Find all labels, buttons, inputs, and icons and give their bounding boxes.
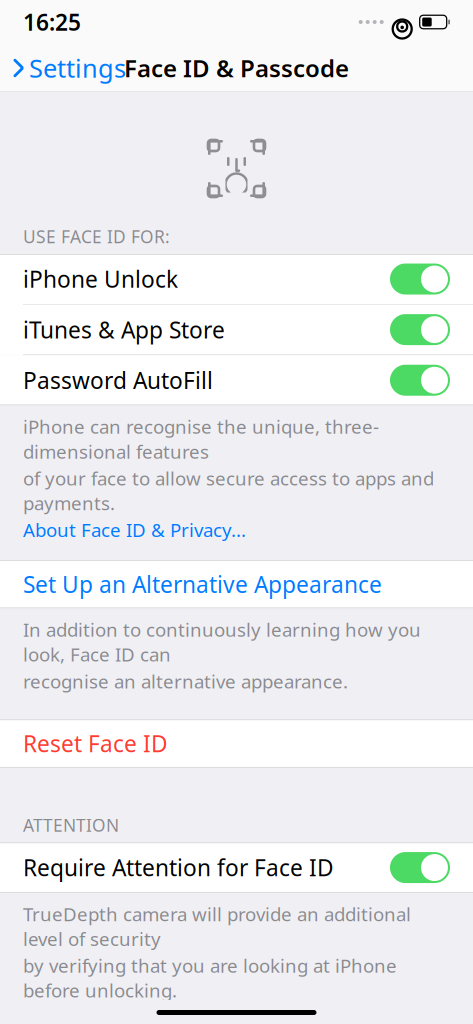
button[interactable]: Set Up an Alternative Appearance bbox=[0, 560, 473, 608]
staticText: USE FACE ID FOR: bbox=[23, 225, 170, 248]
button[interactable]: About Face ID & Privacy... bbox=[23, 517, 246, 542]
button[interactable]: Require Attention for Face ID bbox=[0, 843, 473, 893]
staticText: TrueDepth camera will provide an additio… bbox=[23, 902, 411, 951]
staticText: Settings bbox=[29, 51, 126, 85]
staticText: Face ID & Passcode bbox=[124, 52, 349, 84]
staticText: About Face ID & Privacy... bbox=[23, 517, 246, 542]
button[interactable]: Settings bbox=[0, 46, 136, 90]
staticText: iTunes & App Store bbox=[23, 315, 225, 345]
staticText: iPhone Unlock bbox=[23, 264, 178, 294]
button[interactable]: Reset Face ID bbox=[0, 719, 473, 767]
staticText: iPhone can recognise the unique, three-d… bbox=[23, 414, 379, 464]
staticText: by verifying that you are looking at iPh… bbox=[23, 953, 397, 1003]
button[interactable]: iTunes & App Store bbox=[0, 305, 473, 355]
staticText: of your face to allow secure access to a… bbox=[23, 466, 434, 515]
staticText: Set Up an Alternative Appearance bbox=[23, 569, 382, 599]
staticText: Some sunglasses may block attention dete… bbox=[23, 1005, 448, 1024]
staticText: In addition to continuously learning how… bbox=[23, 617, 421, 667]
button[interactable]: Password AutoFill bbox=[0, 355, 473, 405]
staticText: Password AutoFill bbox=[23, 365, 213, 395]
staticText: Require Attention for Face ID bbox=[23, 852, 334, 883]
staticText: recognise an alternative appearance. bbox=[23, 669, 348, 693]
button[interactable]: iPhone Unlock bbox=[0, 254, 473, 304]
staticText: 16:25 bbox=[23, 7, 81, 37]
staticText: Reset Face ID bbox=[23, 728, 168, 759]
staticText: ATTENTION bbox=[23, 813, 119, 836]
